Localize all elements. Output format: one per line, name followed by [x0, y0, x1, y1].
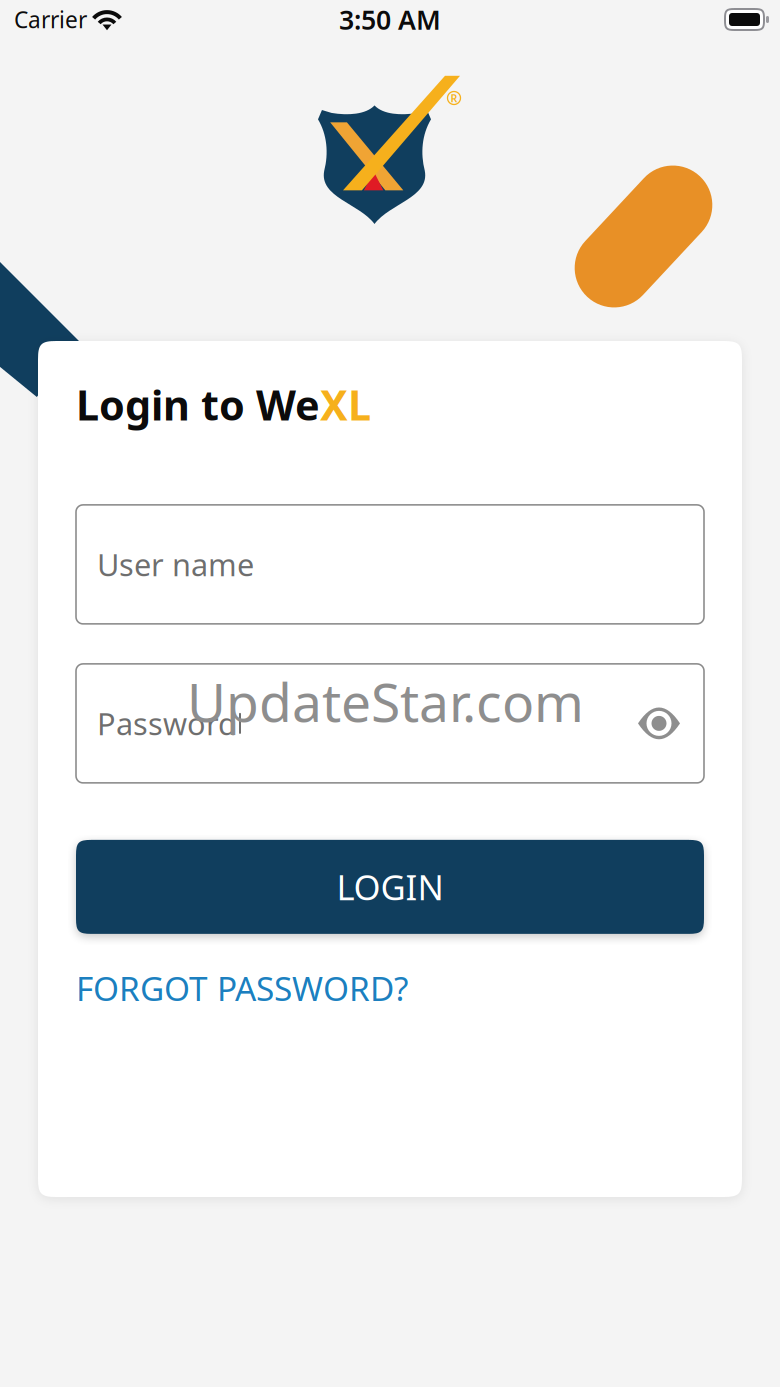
staticText: UpdateStar.com	[187, 666, 584, 737]
staticText: User name	[97, 544, 254, 585]
button[interactable]: Show password	[622, 686, 696, 760]
staticText: R	[450, 91, 457, 105]
staticText: Login to We	[76, 377, 320, 432]
staticText: Carrier	[14, 4, 87, 34]
staticText: FORGOT PASSWORD?	[76, 966, 408, 1010]
staticText: 3:50 AM	[339, 2, 441, 37]
staticText: XL	[320, 377, 371, 432]
button[interactable]: FORGOT PASSWORD?	[76, 952, 408, 1024]
staticText: LOGIN	[336, 864, 443, 910]
button[interactable]: LOGIN	[76, 840, 704, 934]
staticText: Password	[97, 703, 237, 744]
